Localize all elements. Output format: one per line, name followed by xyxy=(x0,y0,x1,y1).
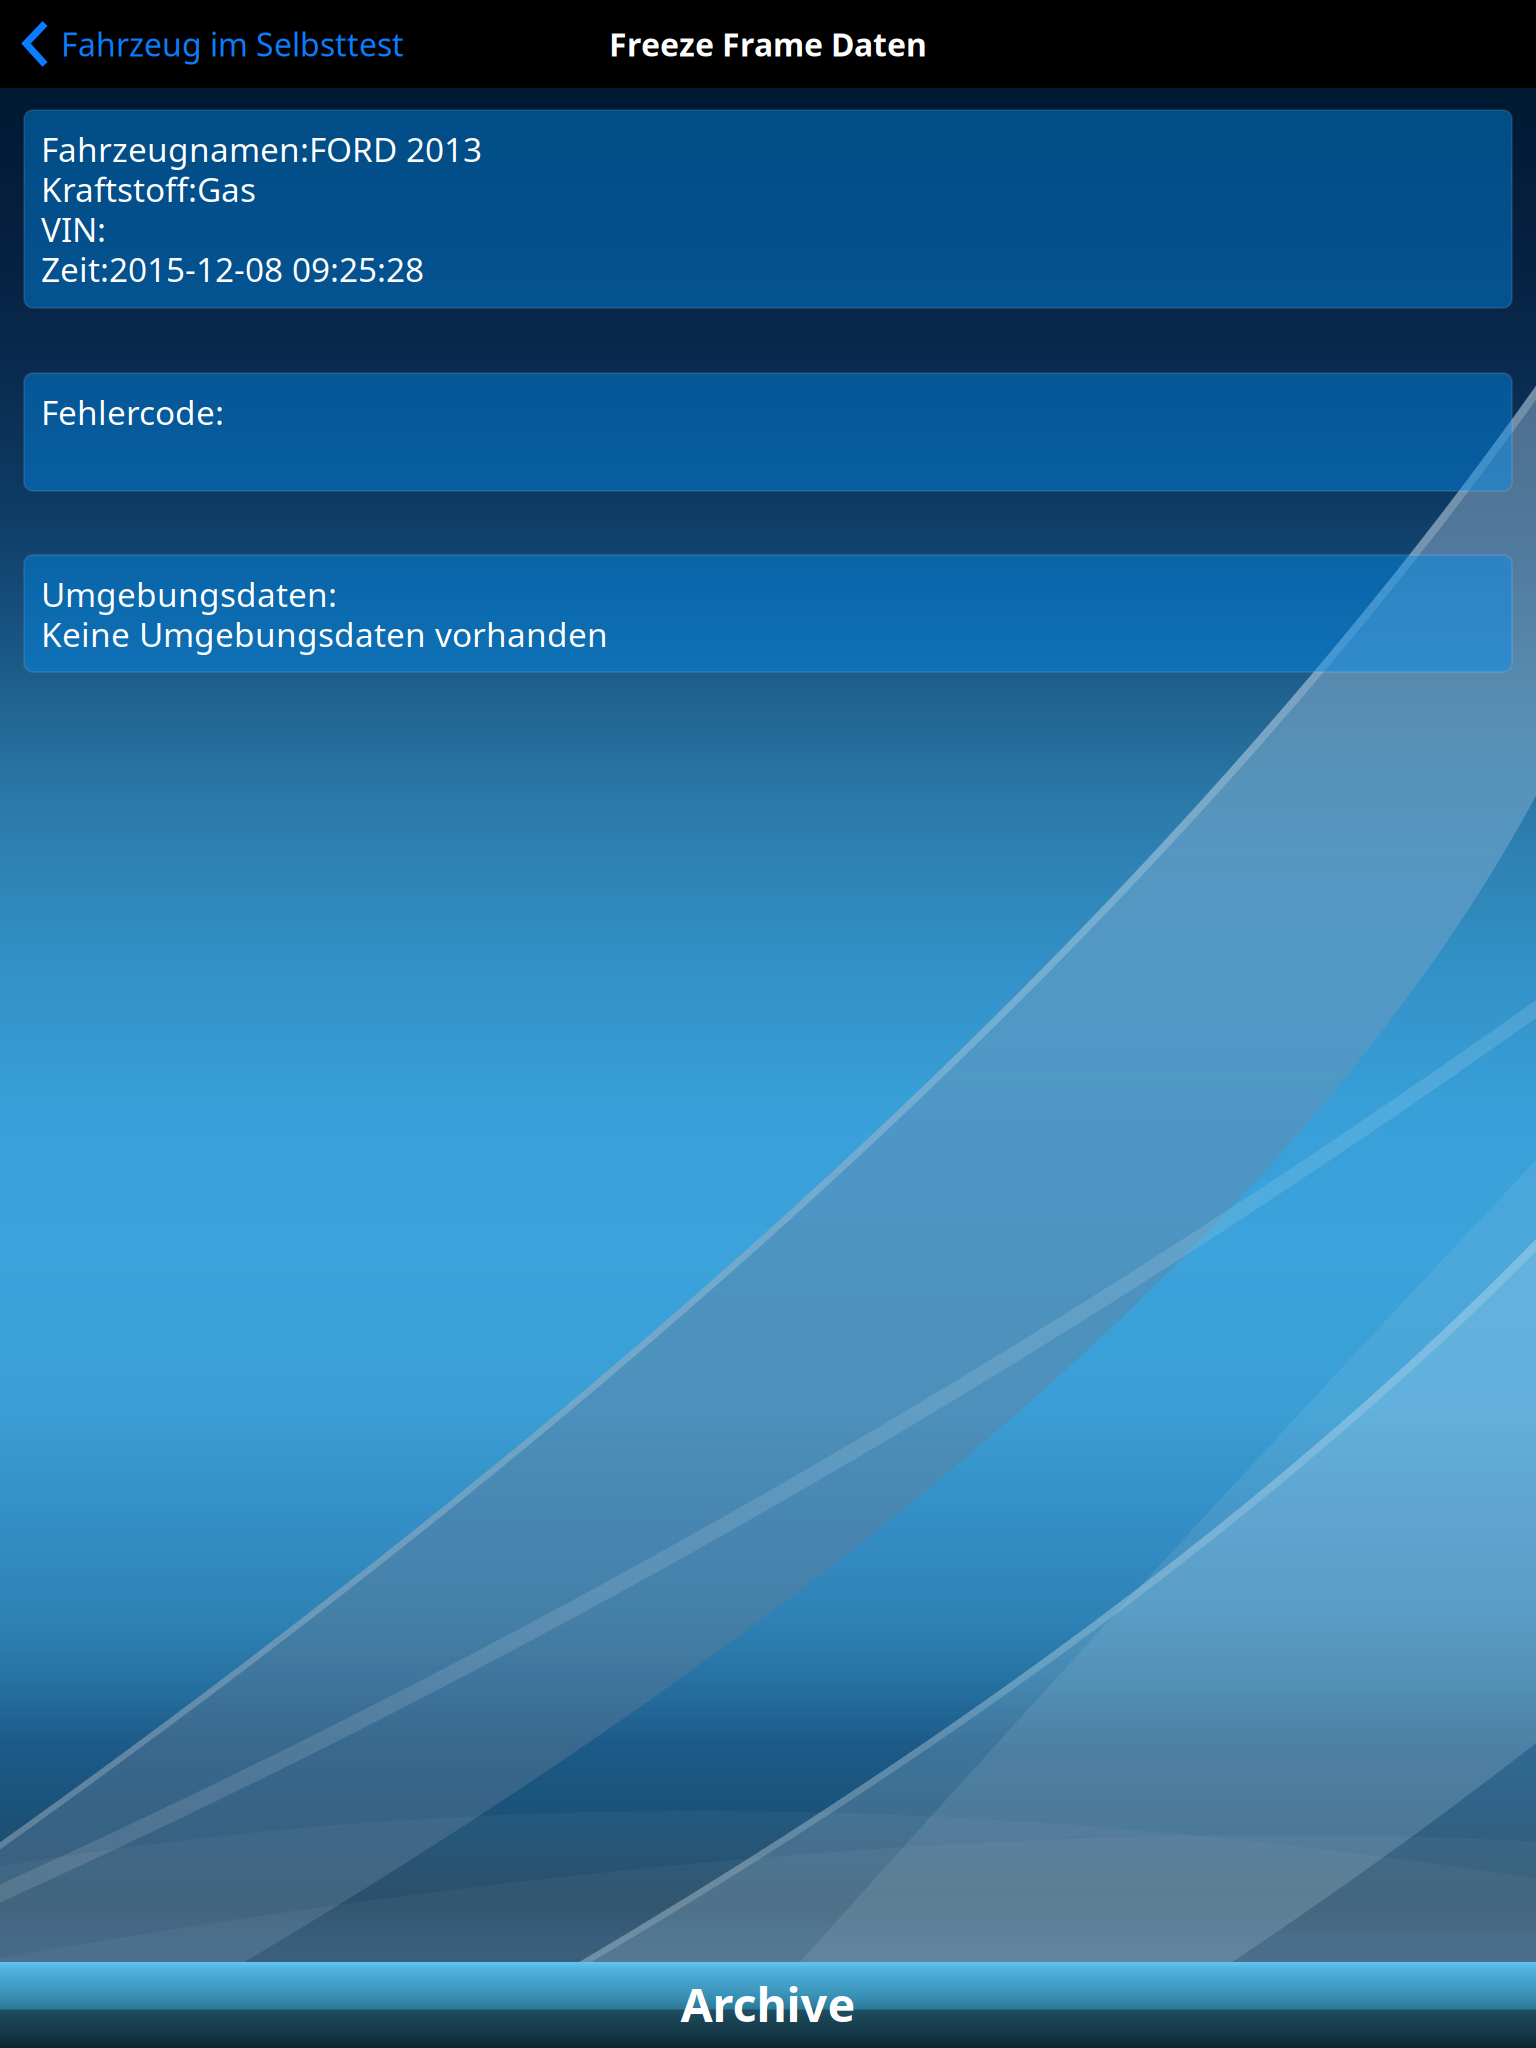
staticText: Archive xyxy=(680,1973,855,2035)
staticText: Zeit:2015-12-08 09:25:28 xyxy=(41,247,424,291)
staticText: Keine Umgebungsdaten vorhanden xyxy=(41,612,608,656)
staticText: Fahrzeugnamen:FORD 2013 xyxy=(41,127,482,171)
button[interactable]: Fahrzeug im Selbsttest xyxy=(0,0,422,88)
staticText: Kraftstoff:Gas xyxy=(41,167,256,211)
staticText: Umgebungsdaten: xyxy=(41,572,337,616)
button[interactable]: Archive xyxy=(0,1962,1536,2048)
staticText: Freeze Frame Daten xyxy=(609,23,927,65)
staticText: VIN: xyxy=(41,207,106,251)
staticText: Fehlercode: xyxy=(41,390,224,434)
staticText: Fahrzeug im Selbsttest xyxy=(61,23,404,65)
